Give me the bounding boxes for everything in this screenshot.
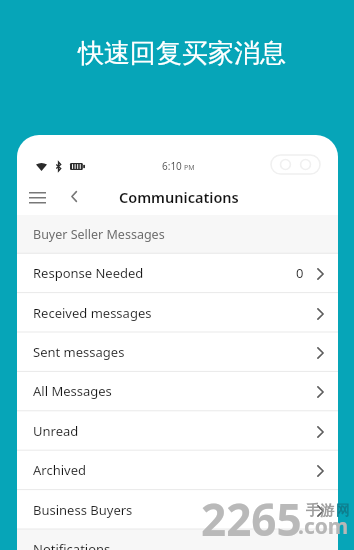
staticText: Communications	[119, 187, 239, 207]
staticText: 快速回复买家消息	[5, 37, 354, 70]
staticText: Business Buyers	[33, 501, 133, 519]
staticText: 2265	[201, 489, 302, 549]
staticText: 6:10	[162, 159, 182, 173]
button[interactable]: Sent messages	[17, 332, 338, 371]
button[interactable]: All Messages	[17, 371, 338, 410]
button[interactable]: Response Needed	[17, 253, 338, 292]
staticText: Unread	[33, 422, 79, 440]
button[interactable]: Archived	[17, 450, 338, 489]
staticText: Received messages	[33, 304, 152, 322]
staticText: PM	[184, 163, 195, 173]
button[interactable]: Back	[57, 179, 91, 214]
staticText: .com	[298, 512, 349, 541]
staticText: Buyer Seller Messages	[33, 226, 165, 243]
button[interactable]: Unread	[17, 411, 338, 450]
staticText: 手游	[306, 502, 334, 520]
staticText: 网	[336, 502, 350, 520]
button[interactable]: Menu	[20, 179, 54, 214]
staticText: Notifications	[33, 540, 111, 550]
staticText: Response Needed	[33, 264, 144, 282]
staticText: 0	[296, 264, 304, 282]
staticText: All Messages	[33, 382, 112, 400]
staticText: Sent messages	[33, 343, 125, 361]
staticText: Archived	[33, 461, 86, 479]
button[interactable]: Business Buyers	[17, 490, 338, 529]
button[interactable]: Received messages	[17, 293, 338, 332]
